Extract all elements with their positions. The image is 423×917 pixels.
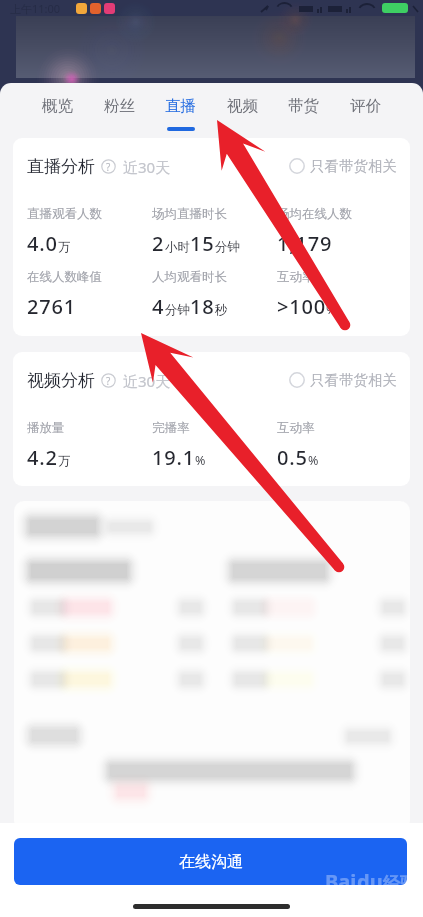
staticText: 场均在线人数 [277, 206, 352, 222]
button[interactable]: 说明 [101, 159, 116, 174]
staticText: 18 [190, 293, 215, 320]
staticText: % [308, 452, 319, 469]
staticText: 近30天 [123, 157, 171, 177]
staticText: 场均直播时长 [152, 206, 227, 222]
staticText: 2 [152, 230, 165, 257]
staticText: 上午11:00 [10, 1, 61, 16]
staticText: 互动率 [277, 269, 315, 285]
staticText: 4.0 [27, 230, 58, 257]
staticText: 在线人数峰值 [27, 269, 102, 285]
staticText: 评价 [350, 96, 381, 116]
staticText: 小时 [165, 239, 190, 255]
staticText: 粉丝 [104, 96, 135, 116]
staticText: 0.5 [277, 444, 308, 471]
staticText: >100 [277, 293, 326, 320]
staticText: 视频分析 [27, 370, 95, 391]
button[interactable]: 概览 [27, 83, 88, 131]
staticText: 概览 [42, 96, 73, 116]
staticText: 4 [152, 293, 165, 320]
button[interactable]: 评价 [335, 83, 396, 131]
staticText: Bai [325, 868, 357, 895]
staticText: 视频 [227, 96, 258, 116]
staticText: 万 [58, 239, 71, 255]
button[interactable]: 视频 [212, 83, 273, 131]
button[interactable]: 带货 [273, 83, 334, 131]
staticText: du [357, 868, 383, 895]
staticText: 带货 [288, 96, 319, 116]
staticText: 只看带货相关 [310, 371, 397, 389]
staticText: 完播率 [152, 420, 190, 436]
staticText: % [326, 301, 337, 318]
staticText: 1,179 [277, 230, 333, 257]
staticText: 直播 [165, 96, 196, 116]
staticText: 万 [58, 453, 71, 469]
staticText: 互动率 [277, 420, 315, 436]
staticText: 直播观看人数 [27, 206, 102, 222]
staticText: 15 [190, 230, 215, 257]
staticText: 分钟 [165, 302, 190, 318]
staticText: 秒 [215, 302, 228, 318]
button[interactable]: 直播 [150, 83, 211, 131]
staticText: 分钟 [215, 239, 240, 255]
staticText: 4.2 [27, 444, 58, 471]
button[interactable]: 只看带货相关 [289, 371, 397, 389]
staticText: % [195, 452, 206, 469]
staticText: ? [106, 160, 111, 174]
staticText: 经验 [383, 873, 417, 894]
staticText: 2761 [27, 293, 76, 320]
staticText: 19.1 [152, 444, 195, 471]
button[interactable]: 说明 [101, 373, 116, 388]
staticText: 近30天 [123, 371, 171, 391]
button[interactable]: 粉丝 [89, 83, 150, 131]
button[interactable]: 在线沟通 [14, 838, 407, 885]
staticText: 播放量 [27, 420, 65, 436]
staticText: 在线沟通 [179, 852, 243, 872]
staticText: 人均观看时长 [152, 269, 227, 285]
staticText: 只看带货相关 [310, 157, 397, 175]
staticText: ? [106, 374, 111, 388]
button[interactable]: 只看带货相关 [289, 157, 397, 175]
staticText: 直播分析 [27, 156, 95, 177]
